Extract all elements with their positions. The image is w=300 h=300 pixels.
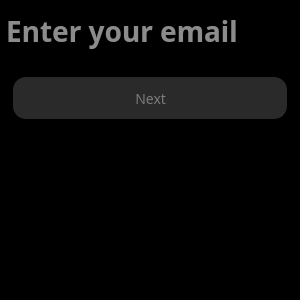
staticText: Enter your email — [6, 12, 238, 50]
button[interactable]: Next — [13, 77, 287, 119]
staticText: Next — [135, 89, 166, 108]
